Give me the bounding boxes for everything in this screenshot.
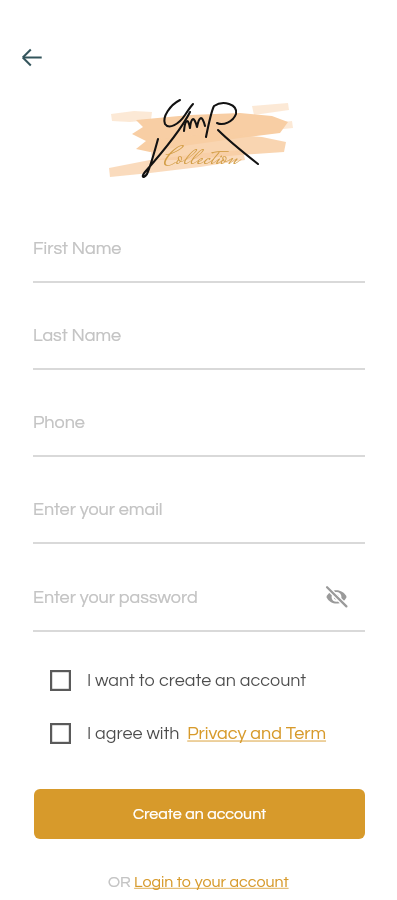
button[interactable]: I want to create an account [50, 670, 307, 691]
staticText: Enter your password [33, 588, 198, 607]
button[interactable]: I agree with Privacy and Term [50, 723, 327, 744]
staticText: First Name [33, 239, 122, 258]
staticText: Create an account [133, 806, 267, 822]
staticText: OR Login to your account [108, 874, 289, 890]
button[interactable]: OR Login to your account [108, 874, 289, 890]
button[interactable]: Show password [320, 580, 353, 613]
staticText: Last Name [33, 326, 122, 345]
staticText: Enter your email [33, 500, 163, 519]
button[interactable]: Create an account [34, 789, 365, 839]
staticText: I agree with Privacy and Term [87, 724, 327, 743]
staticText: I want to create an account [87, 671, 307, 690]
button[interactable]: Back [13, 35, 57, 79]
staticText: Phone [33, 413, 85, 432]
staticText: Collection [164, 139, 238, 182]
